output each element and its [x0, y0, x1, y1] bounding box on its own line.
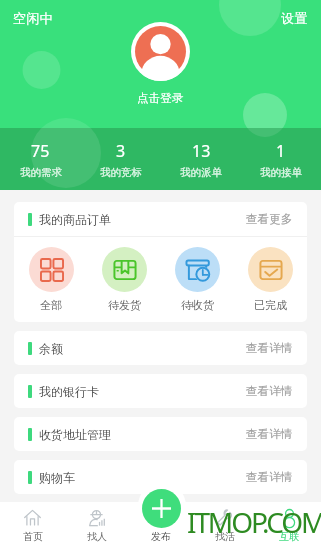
button[interactable]: 已完成 [234, 247, 307, 312]
staticText: 我的银行卡 [39, 384, 99, 399]
button[interactable]: 设置 [281, 10, 308, 27]
button[interactable]: 购物车 [14, 460, 307, 494]
staticText: 75 [31, 140, 50, 162]
staticText: 我的接单 [260, 166, 302, 179]
button[interactable]: 首页 [0, 502, 65, 550]
staticText: 查看更多 [246, 212, 293, 227]
button[interactable]: 3 [81, 128, 161, 190]
staticText: 空闲中 [13, 10, 53, 27]
button[interactable]: 互联 [257, 502, 321, 550]
staticText: 3 [116, 140, 126, 162]
button[interactable]: 发布 [142, 489, 181, 528]
button[interactable]: 我的银行卡 [14, 374, 307, 408]
staticText: 我的派单 [180, 166, 222, 179]
staticText: 1 [276, 140, 286, 162]
staticText: 购物车 [39, 470, 75, 485]
button[interactable]: 13 [161, 128, 241, 190]
button[interactable]: 1 [241, 128, 321, 190]
staticText: 13 [192, 140, 211, 162]
staticText: 点击登录 [137, 91, 184, 106]
staticText: 我的需求 [20, 166, 62, 179]
staticText: 查看详情 [246, 470, 293, 485]
staticText: ITMOP.COM [187, 503, 321, 541]
button[interactable]: 收货地址管理 [14, 417, 307, 451]
button[interactable]: 找活 [193, 502, 257, 550]
staticText: 查看详情 [246, 427, 293, 442]
staticText: 收货地址管理 [39, 427, 111, 442]
button[interactable]: 75 [0, 128, 81, 190]
staticText: 查看详情 [246, 384, 293, 399]
staticText: 互联 [279, 530, 299, 543]
staticText: 设置 [281, 10, 308, 27]
staticText: 全部 [40, 298, 62, 312]
button[interactable]: 我的商品订单 [14, 202, 307, 236]
staticText: 查看详情 [246, 341, 293, 356]
staticText: 我的竞标 [100, 166, 142, 179]
staticText: 待收货 [181, 298, 214, 312]
button[interactable] [131, 22, 190, 81]
staticText: 首页 [23, 530, 43, 543]
staticText: 找活 [215, 530, 235, 543]
staticText: 发布 [151, 530, 171, 543]
button[interactable]: 待收货 [161, 247, 234, 312]
button[interactable]: 全部 [14, 247, 88, 312]
staticText: 余额 [39, 341, 63, 356]
button[interactable]: 待发货 [88, 247, 161, 312]
staticText: 我的商品订单 [39, 212, 111, 227]
staticText: 待发货 [108, 298, 141, 312]
staticText: 找人 [87, 530, 107, 543]
staticText: 已完成 [254, 298, 287, 312]
button[interactable]: 余额 [14, 331, 307, 365]
button[interactable]: 找人 [65, 502, 129, 550]
